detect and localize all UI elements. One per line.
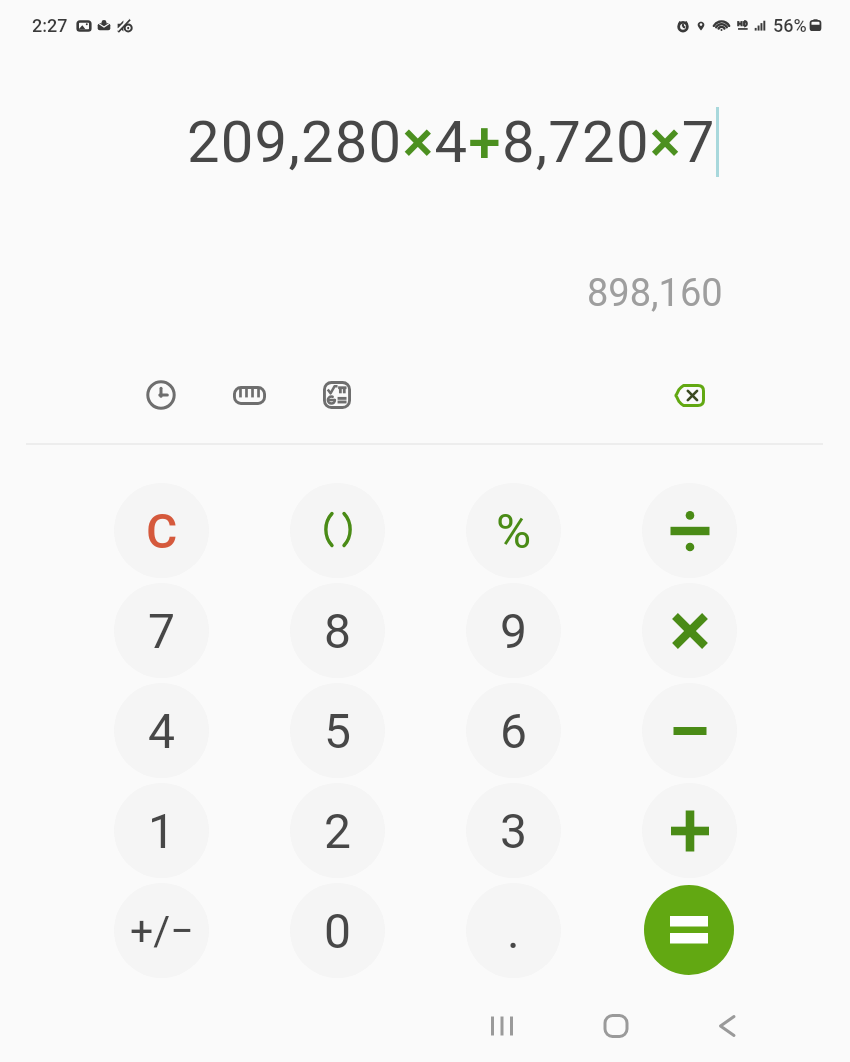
button[interactable]: Plus minus: [114, 883, 209, 978]
staticText: 5: [324, 703, 351, 759]
staticText: C: [146, 503, 178, 559]
button[interactable]: Back: [687, 990, 767, 1062]
button[interactable]: 2: [290, 783, 385, 878]
staticText: 2: [324, 803, 351, 859]
staticText: .: [507, 903, 520, 959]
button[interactable]: Divide: [642, 483, 737, 578]
button[interactable]: Subtract: [642, 683, 737, 778]
button[interactable]: 3: [466, 783, 561, 878]
button[interactable]: 0: [290, 883, 385, 978]
button[interactable]: Multiply: [642, 583, 737, 678]
staticText: 56%: [773, 15, 807, 36]
button[interactable]: 8: [290, 583, 385, 678]
button[interactable]: 5: [290, 683, 385, 778]
staticText: 9: [500, 603, 527, 659]
button[interactable]: Home: [576, 990, 656, 1062]
button[interactable]: Calculation history: [129, 363, 193, 427]
button[interactable]: Unit converter: [217, 363, 281, 427]
button[interactable]: Equals: [644, 885, 734, 975]
staticText: 209,280×4+8,720×7: [187, 108, 716, 176]
staticText: 0: [324, 903, 351, 959]
button[interactable]: Recent apps: [462, 990, 542, 1062]
button[interactable]: Backspace: [657, 363, 721, 427]
staticText: 7: [148, 603, 175, 659]
staticText: 3: [500, 803, 527, 859]
button[interactable]: %: [466, 483, 561, 578]
staticText: %: [496, 503, 532, 559]
staticText: 2:27: [32, 15, 68, 36]
button[interactable]: Scientific calculator: [305, 363, 369, 427]
staticText: 6: [500, 703, 527, 759]
button[interactable]: Add: [642, 783, 737, 878]
button[interactable]: 9: [466, 583, 561, 678]
button[interactable]: .: [466, 883, 561, 978]
button[interactable]: 7: [114, 583, 209, 678]
staticText: 4: [148, 703, 175, 759]
button[interactable]: 1: [114, 783, 209, 878]
staticText: +/−: [130, 907, 194, 955]
button[interactable]: Parentheses: [290, 483, 385, 578]
staticText: 898,160: [587, 271, 723, 316]
button[interactable]: 4: [114, 683, 209, 778]
button[interactable]: C: [114, 483, 209, 578]
staticText: 1: [148, 803, 175, 859]
button[interactable]: 6: [466, 683, 561, 778]
staticText: 8: [324, 603, 351, 659]
